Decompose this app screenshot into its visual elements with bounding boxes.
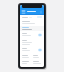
button[interactable]: More options: [39, 10, 43, 14]
button[interactable]: [22, 17, 28, 18]
button[interactable]: View details: [38, 33, 42, 37]
button[interactable]: Attachment: [38, 48, 42, 52]
button[interactable]: [20, 26, 44, 31]
button[interactable]: View details: [20, 32, 44, 38]
button[interactable]: Navigation menu: [21, 9, 26, 14]
button[interactable]: [20, 60, 44, 65]
button[interactable]: [20, 54, 44, 59]
button[interactable]: Attachment: [20, 47, 44, 53]
button[interactable]: [20, 39, 44, 46]
button[interactable]: [20, 20, 44, 25]
